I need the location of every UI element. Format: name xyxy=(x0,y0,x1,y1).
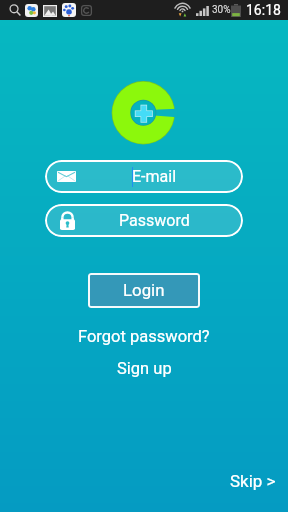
staticText: Forgot password? xyxy=(78,327,210,346)
other: Logo xyxy=(106,75,181,150)
button[interactable]: Forgot password? xyxy=(72,324,216,349)
staticText: 16:18 xyxy=(246,2,281,18)
staticText: E-mail xyxy=(132,167,177,186)
staticText: Sign up xyxy=(117,359,172,378)
staticText: 30% xyxy=(212,4,231,16)
button[interactable]: E-mail xyxy=(45,160,243,193)
button[interactable]: Password xyxy=(45,204,243,237)
button[interactable]: Sign up xyxy=(111,356,178,381)
staticText: Login xyxy=(123,280,165,300)
staticText: Skip > xyxy=(230,471,276,491)
staticText: Password xyxy=(119,211,190,230)
button[interactable]: Login xyxy=(88,273,200,308)
button[interactable]: Skip > xyxy=(226,469,280,493)
